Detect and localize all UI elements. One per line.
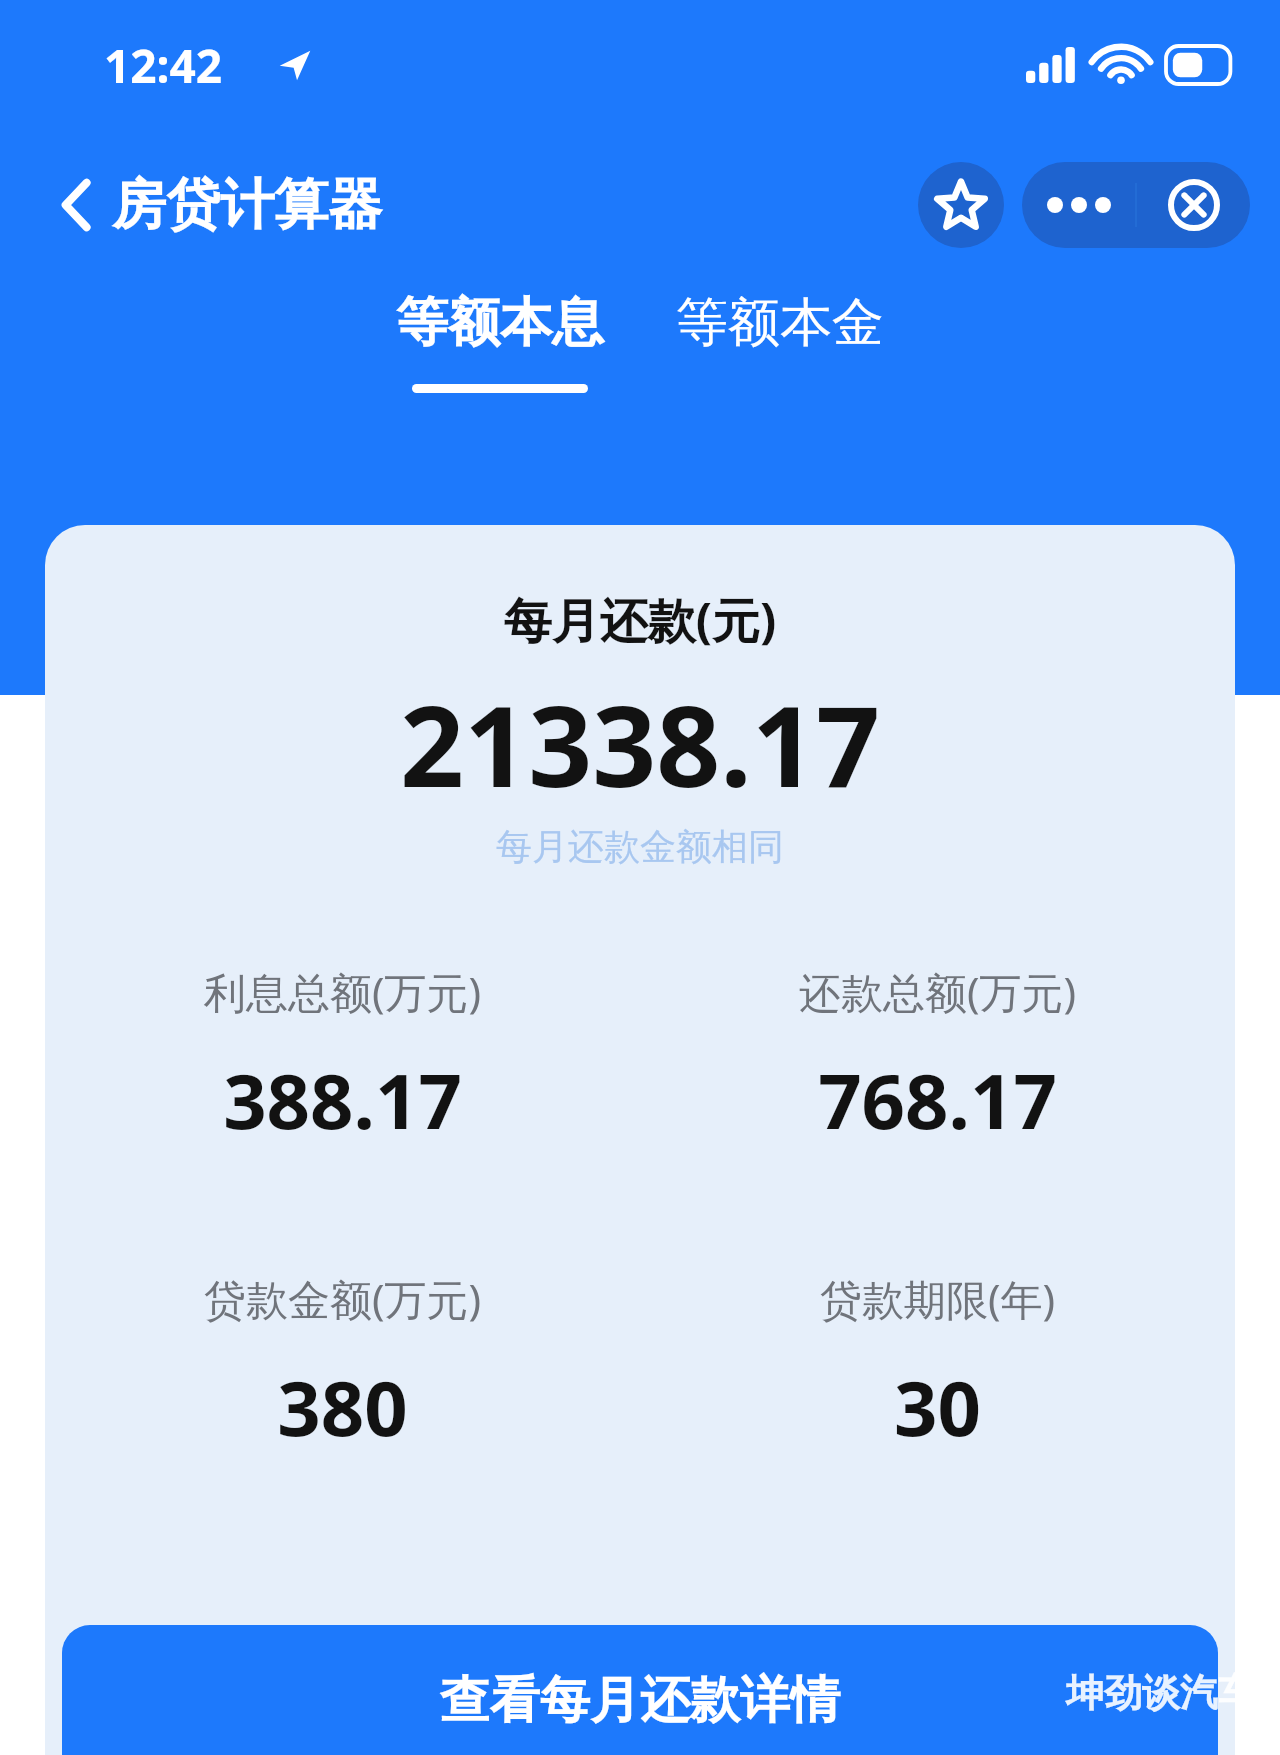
staticText: 还款总额(万元) xyxy=(640,963,1235,1020)
staticText: 等额本金 xyxy=(676,290,884,356)
button[interactable]: Favorite xyxy=(918,162,1004,248)
staticText: 查看每月还款详情 xyxy=(62,1669,1218,1732)
button[interactable]: More options xyxy=(1022,162,1135,248)
staticText: 21338.17 xyxy=(45,667,1235,820)
staticText: 每月还款金额相同 xyxy=(45,824,1235,869)
staticText: 房贷计算器 xyxy=(112,171,382,239)
staticText: 30 xyxy=(640,1355,1235,1459)
staticText: 388.17 xyxy=(45,1048,640,1152)
button[interactable]: 等额本金 xyxy=(648,290,912,393)
other: Back xyxy=(62,179,92,231)
staticText: 768.17 xyxy=(640,1048,1235,1152)
staticText: 贷款金额(万元) xyxy=(45,1270,640,1327)
button[interactable]: 查看每月还款详情 xyxy=(62,1625,1218,1755)
staticText: 380 xyxy=(45,1355,640,1459)
staticText: 坤劲谈汽车 xyxy=(1066,1669,1256,1717)
staticText: 12:42 xyxy=(104,34,223,97)
button[interactable]: Back xyxy=(56,165,388,245)
button[interactable]: Close xyxy=(1137,162,1250,248)
staticText: 每月还款(元) xyxy=(45,587,1235,653)
staticText: 利息总额(万元) xyxy=(45,963,640,1020)
button[interactable]: 等额本息 xyxy=(368,290,632,393)
staticText: 等额本息 xyxy=(396,290,604,356)
staticText: 贷款期限(年) xyxy=(640,1270,1235,1327)
